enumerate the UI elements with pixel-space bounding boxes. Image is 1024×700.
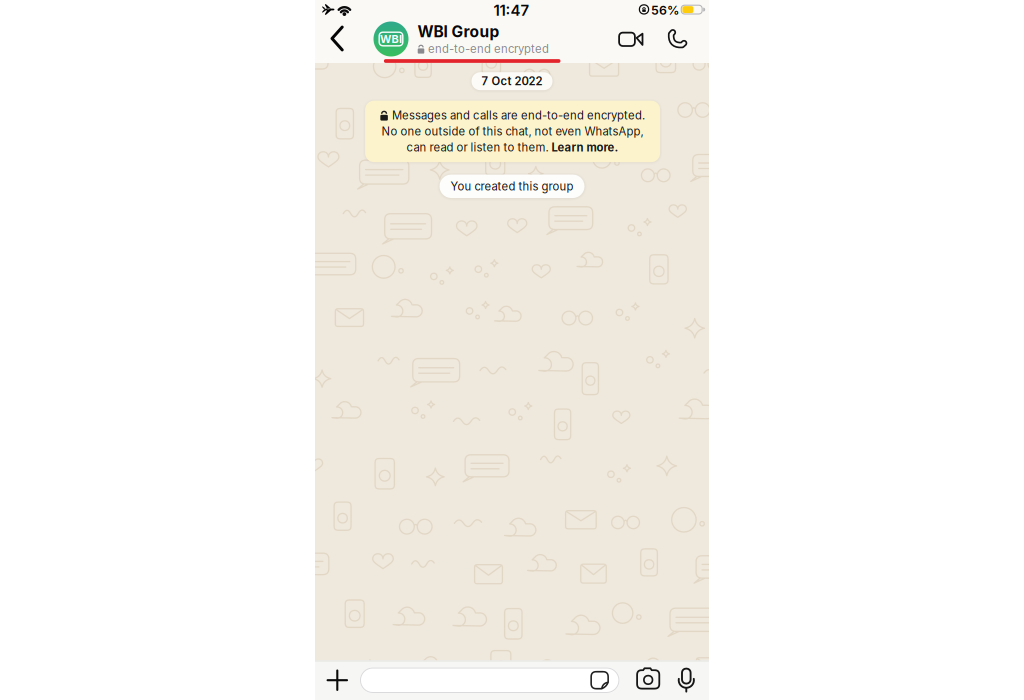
button[interactable] xyxy=(666,29,687,50)
staticText: No one outside of this chat, not even Wh… xyxy=(382,125,644,138)
staticText: Messages and calls are end-to-end encryp… xyxy=(392,108,645,122)
staticText: 11:47 xyxy=(493,1,529,19)
staticText: 56% xyxy=(651,3,679,18)
button[interactable]: WBI xyxy=(373,21,567,56)
button[interactable] xyxy=(636,667,660,689)
button[interactable] xyxy=(325,668,349,692)
staticText: You created this group xyxy=(450,179,573,193)
staticText: WBI xyxy=(380,32,402,46)
button[interactable] xyxy=(329,24,346,52)
button[interactable] xyxy=(675,667,697,697)
staticText: can read or listen to them. xyxy=(407,141,552,154)
staticText: Learn more. xyxy=(552,141,619,154)
staticText: end-to-end encrypted xyxy=(428,42,549,56)
button[interactable]: Messages and calls are end-to-end encryp… xyxy=(365,101,660,162)
staticText: WBI Group xyxy=(417,22,499,41)
staticText: 7 Oct 2022 xyxy=(481,74,542,88)
button[interactable] xyxy=(360,667,619,693)
button[interactable] xyxy=(617,30,644,48)
